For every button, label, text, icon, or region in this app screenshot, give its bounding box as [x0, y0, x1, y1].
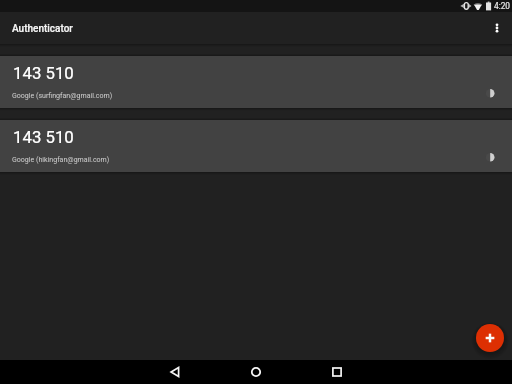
- button[interactable]: More options: [485, 16, 509, 40]
- staticText: 143 510: [13, 127, 74, 147]
- button[interactable]: Home: [244, 360, 268, 384]
- button[interactable]: Back: [163, 360, 187, 384]
- button[interactable]: Add account: [476, 324, 504, 352]
- staticText: Authenticator: [12, 23, 73, 35]
- staticText: Google (hikingfan@gmail.com): [12, 155, 110, 163]
- staticText: Google (surfingfan@gmail.com): [12, 91, 113, 99]
- button[interactable]: 143 510: [0, 120, 512, 172]
- staticText: 143 510: [13, 63, 74, 83]
- staticText: 4:20: [494, 1, 510, 11]
- button[interactable]: 143 510: [0, 56, 512, 108]
- button[interactable]: Recent apps: [325, 360, 349, 384]
